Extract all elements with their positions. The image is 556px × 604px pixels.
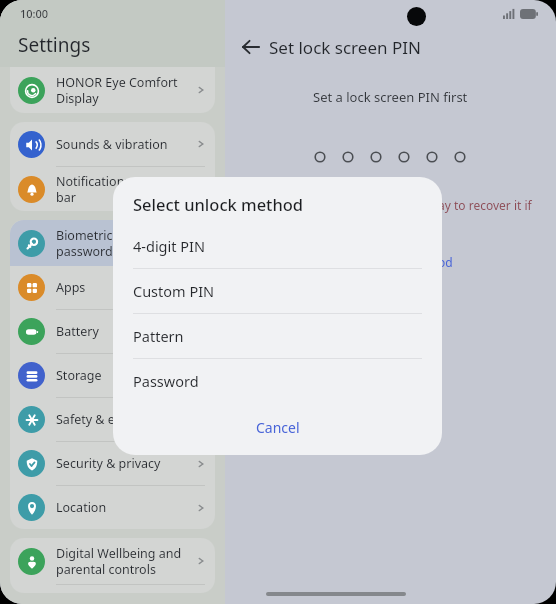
staticText: Apps <box>56 279 195 296</box>
staticText: Biometrics & password <box>56 227 195 259</box>
staticText: Set lock screen PIN <box>269 36 421 59</box>
button[interactable]: Location <box>10 486 215 529</box>
staticText: 10:00 <box>20 6 49 21</box>
button[interactable]: 4-digit PIN <box>113 224 442 269</box>
staticText: Pattern <box>133 326 184 346</box>
button[interactable]: Notifications & status bar <box>10 167 215 211</box>
staticText: Location <box>56 499 195 516</box>
staticText: HONOR Eye Comfort Display <box>56 74 195 106</box>
staticText: ay to recover it if <box>438 197 532 213</box>
staticText: Notifications & status bar <box>56 173 195 205</box>
staticText: Battery <box>56 323 195 340</box>
button[interactable]: Digital Wellbeing and parental controls <box>10 538 215 585</box>
button[interactable]: Apps <box>10 266 215 310</box>
staticText: Sounds & vibration <box>56 136 195 153</box>
button[interactable]: Sounds & vibration <box>10 122 215 167</box>
button[interactable]: Safety & emergency <box>10 398 215 442</box>
staticText: od <box>438 254 453 270</box>
button[interactable]: Password <box>113 359 442 403</box>
button[interactable]: Battery <box>10 310 215 354</box>
staticText: Set a lock screen PIN first <box>313 88 468 106</box>
button[interactable]: HONOR Eye Comfort Display <box>10 67 215 113</box>
staticText: Password <box>133 371 199 391</box>
staticText: Select unlock method <box>133 193 304 215</box>
button[interactable]: Security & privacy <box>10 442 215 486</box>
button[interactable]: Storage <box>10 354 215 398</box>
staticText: Safety & emergency <box>56 411 195 428</box>
staticText: Storage <box>56 367 195 384</box>
button[interactable]: Back <box>236 32 266 62</box>
button[interactable]: Biometrics & password <box>10 220 215 266</box>
staticText: 4-digit PIN <box>133 236 205 256</box>
staticText: Settings <box>18 32 91 58</box>
button[interactable]: Cancel <box>113 403 442 451</box>
button[interactable]: Custom PIN <box>113 269 442 314</box>
button[interactable]: Pattern <box>113 314 442 359</box>
staticText: Cancel <box>256 418 300 437</box>
staticText: Security & privacy <box>56 455 195 472</box>
staticText: Custom PIN <box>133 281 215 301</box>
staticText: Digital Wellbeing and parental controls <box>56 545 195 577</box>
